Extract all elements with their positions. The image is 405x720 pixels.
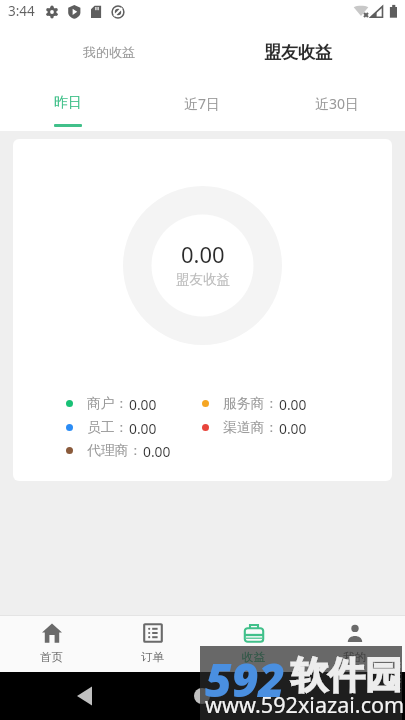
button[interactable]: 收益 [203,616,304,672]
staticText: 员工： [87,419,129,435]
button[interactable]: 我的 [304,616,405,672]
staticText: www.592xiazai.com [205,690,405,719]
staticText: 代理商： [87,442,143,458]
staticText: 592 [205,648,286,711]
staticText: 商户： [87,395,129,411]
staticText: 盟友收益 [176,271,230,288]
staticText: 0.00 [279,419,307,435]
staticText: 我的 [343,650,366,664]
staticText: 0.00 [129,419,157,435]
staticText: 近7日 [184,94,221,113]
staticText: 0.00 [143,442,171,458]
button[interactable]: 近30日 [270,79,405,131]
staticText: 首页 [40,650,63,664]
staticText: 软件园 [291,652,402,699]
staticText: 我的收益 [83,44,135,60]
staticText: 昨日 [54,94,82,112]
staticText: 盟友收益 [264,42,332,63]
staticText: 服务商： [223,395,279,411]
staticText: 3:44 [8,2,35,20]
staticText: 近30日 [315,94,360,113]
button[interactable]: 订单 [102,616,203,672]
staticText: 0.00 [129,395,157,411]
button[interactable]: 我的收益 [54,26,163,77]
button[interactable]: 首页 [0,616,102,672]
button[interactable]: 盟友收益 [243,27,352,78]
staticText: 订单 [141,650,164,664]
button[interactable]: 昨日 [0,79,135,131]
staticText: 渠道商： [223,419,279,435]
button[interactable]: 近7日 [135,79,270,131]
staticText: 0.00 [181,239,225,269]
staticText: 0.00 [279,395,307,411]
staticText: 收益 [242,650,265,664]
